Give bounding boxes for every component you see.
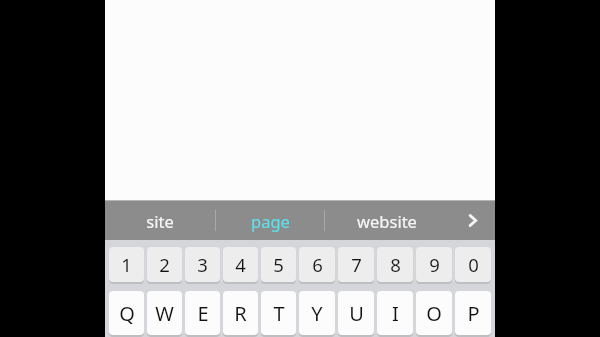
- staticText: U: [349, 300, 364, 327]
- staticText: website: [357, 210, 417, 232]
- button[interactable]: website: [325, 201, 449, 240]
- button[interactable]: T: [261, 291, 296, 337]
- staticText: page: [251, 210, 290, 232]
- button[interactable]: P: [455, 291, 491, 337]
- button[interactable]: R: [223, 291, 258, 337]
- staticText: 0: [468, 252, 479, 277]
- staticText: 4: [235, 252, 246, 277]
- staticText: 7: [351, 252, 362, 277]
- button[interactable]: I: [377, 291, 413, 337]
- staticText: 8: [390, 252, 401, 277]
- button[interactable]: 0: [455, 247, 491, 284]
- staticText: 5: [273, 252, 284, 277]
- staticText: 1: [121, 252, 132, 277]
- button[interactable]: 6: [299, 247, 335, 284]
- staticText: I: [392, 300, 399, 327]
- staticText: R: [234, 300, 247, 327]
- button[interactable]: Y: [299, 291, 335, 337]
- button[interactable]: 5: [261, 247, 296, 284]
- button[interactable]: 1: [109, 247, 144, 284]
- staticText: T: [273, 300, 285, 327]
- button[interactable]: O: [416, 291, 452, 337]
- button[interactable]: 2: [147, 247, 182, 284]
- button[interactable]: Q: [109, 291, 144, 337]
- button[interactable]: W: [147, 291, 182, 337]
- staticText: O: [426, 300, 442, 327]
- button[interactable]: page: [216, 201, 324, 240]
- staticText: 9: [429, 252, 440, 277]
- staticText: site: [146, 210, 174, 232]
- button[interactable]: E: [185, 291, 220, 337]
- staticText: 6: [312, 252, 323, 277]
- button[interactable]: 7: [338, 247, 374, 284]
- staticText: 3: [197, 252, 208, 277]
- button[interactable]: 4: [223, 247, 258, 284]
- button[interactable]: More suggestions: [449, 201, 495, 240]
- button[interactable]: 9: [416, 247, 452, 284]
- staticText: E: [197, 300, 209, 327]
- staticText: P: [467, 300, 480, 327]
- button[interactable]: 3: [185, 247, 220, 284]
- button[interactable]: 8: [377, 247, 413, 284]
- button[interactable]: site: [105, 201, 215, 240]
- staticText: W: [155, 300, 174, 327]
- button[interactable]: U: [338, 291, 374, 337]
- staticText: Y: [311, 300, 323, 327]
- staticText: Q: [119, 300, 135, 327]
- staticText: 2: [159, 252, 170, 277]
